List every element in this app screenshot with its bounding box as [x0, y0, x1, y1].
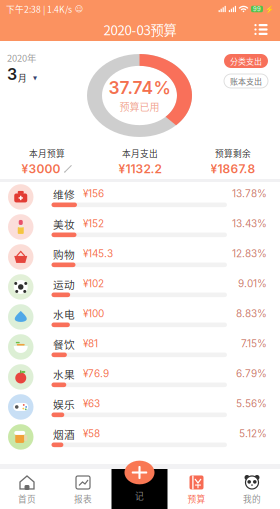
- staticText: 我的: [243, 492, 261, 505]
- staticText: 7.15%: [241, 337, 267, 350]
- staticText: ¥58: [83, 427, 100, 440]
- staticText: ¥76.9: [83, 367, 109, 380]
- staticText: 5.56%: [236, 397, 267, 410]
- button[interactable]: 娱乐: [0, 392, 280, 422]
- staticText: 5.12%: [239, 427, 267, 440]
- staticText: 水果: [53, 366, 75, 382]
- button[interactable]: 水电: [0, 302, 280, 332]
- staticText: 预算已用: [119, 99, 159, 114]
- staticText: ¥1867.8: [210, 161, 255, 176]
- staticText: 首页: [18, 492, 36, 505]
- staticText: ⚡: [265, 5, 274, 13]
- staticText: 13.78%: [232, 187, 267, 200]
- staticText: 8.83%: [236, 307, 267, 320]
- staticText: ¥152: [83, 217, 104, 230]
- staticText: 9.01%: [238, 277, 267, 290]
- staticText: ¥156: [83, 187, 104, 200]
- staticText: ¥100: [83, 307, 104, 320]
- staticText: 水电: [53, 306, 75, 322]
- staticText: 下午2:38 | 1.4K/s: [6, 3, 72, 15]
- staticText: 2020-03预算: [103, 20, 176, 39]
- button[interactable]: 账本支出: [224, 74, 268, 88]
- staticText: 分类支出: [230, 55, 262, 67]
- staticText: 运动: [53, 276, 75, 292]
- button[interactable]: 运动: [0, 272, 280, 302]
- button[interactable]: 预算: [168, 474, 224, 506]
- staticText: 报表: [74, 492, 92, 505]
- staticText: ¥145.3: [83, 247, 113, 260]
- staticText: ¥81: [83, 337, 98, 350]
- staticText: 购物: [53, 246, 75, 262]
- button[interactable]: 水果: [0, 362, 280, 392]
- staticText: 12.83%: [232, 247, 267, 260]
- staticText: ¥63: [83, 397, 100, 410]
- button[interactable]: 我的: [224, 474, 280, 506]
- staticText: 月: [18, 71, 27, 84]
- staticText: 99: [253, 5, 261, 13]
- staticText: ▾: [33, 73, 37, 82]
- staticText: 37.74%: [108, 77, 170, 98]
- button[interactable]: 记一笔: [111, 469, 167, 509]
- staticText: 美妆: [53, 216, 75, 232]
- staticText: 本月支出: [122, 147, 158, 159]
- staticText: 6.79%: [236, 367, 267, 380]
- staticText: 娱乐: [53, 396, 75, 412]
- button[interactable]: 分类支出: [224, 54, 268, 68]
- button[interactable]: 报表: [55, 474, 111, 506]
- staticText: ¥3000: [21, 161, 60, 176]
- staticText: ¥102: [83, 277, 104, 290]
- button[interactable]: 维修: [0, 182, 280, 212]
- staticText: ¥1132.2: [118, 161, 161, 176]
- staticText: 预算剩余: [215, 147, 251, 159]
- staticText: ☺: [72, 4, 83, 14]
- staticText: 13.43%: [232, 217, 267, 230]
- button[interactable]: 分类列表: [250, 20, 272, 39]
- staticText: 预算: [187, 492, 205, 505]
- staticText: 餐饮: [53, 336, 75, 352]
- staticText: 账本支出: [230, 75, 262, 87]
- staticText: 本月预算: [29, 147, 65, 159]
- staticText: 3: [7, 64, 17, 84]
- button[interactable]: 烟酒: [0, 422, 280, 452]
- button[interactable]: 2020年: [7, 51, 57, 84]
- button[interactable]: 购物: [0, 242, 280, 272]
- staticText: 2020年: [7, 51, 36, 64]
- staticText: 维修: [53, 186, 75, 202]
- button[interactable]: 美妆: [0, 212, 280, 242]
- staticText: 记: [135, 489, 144, 502]
- button[interactable]: 首页: [0, 474, 55, 506]
- staticText: 烟酒: [53, 426, 75, 442]
- button[interactable]: 餐饮: [0, 332, 280, 362]
